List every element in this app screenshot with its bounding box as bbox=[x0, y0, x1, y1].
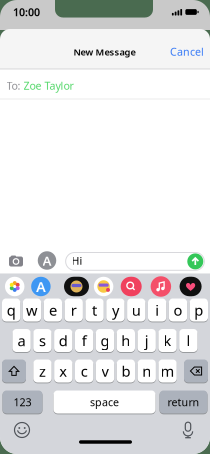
button[interactable]: Apps bbox=[38, 251, 56, 270]
staticText: 123 bbox=[13, 395, 31, 409]
staticText: h bbox=[121, 331, 130, 350]
staticText: i bbox=[155, 300, 159, 320]
staticText: l bbox=[186, 331, 190, 350]
staticText: x bbox=[59, 361, 67, 381]
button[interactable]: u bbox=[127, 298, 145, 322]
staticText: t bbox=[92, 300, 97, 320]
staticText: m bbox=[161, 361, 175, 381]
button[interactable]: Send bbox=[187, 253, 203, 269]
staticText: Hi bbox=[71, 254, 82, 268]
staticText: f bbox=[82, 331, 87, 350]
staticText: k bbox=[163, 331, 171, 350]
button[interactable]: Emoji bbox=[13, 421, 30, 438]
button[interactable]: s bbox=[33, 328, 52, 352]
button[interactable]: y bbox=[106, 298, 125, 322]
button[interactable]: o bbox=[169, 298, 187, 322]
staticText: p bbox=[194, 300, 203, 320]
button[interactable]: x bbox=[54, 359, 73, 383]
staticText: j bbox=[145, 331, 149, 350]
button[interactable]: Shift bbox=[2, 359, 26, 383]
staticText: z bbox=[39, 361, 46, 381]
button[interactable]: f bbox=[75, 328, 93, 352]
staticText: Zoe Taylor bbox=[23, 78, 73, 93]
staticText: v bbox=[101, 361, 108, 381]
button[interactable]: l bbox=[179, 328, 198, 352]
button[interactable]: k bbox=[158, 328, 177, 352]
button[interactable]: i bbox=[148, 298, 166, 322]
staticText: 10:00 bbox=[13, 5, 40, 19]
staticText: d bbox=[59, 331, 68, 350]
button[interactable]: j bbox=[137, 328, 156, 352]
button[interactable]: a bbox=[12, 328, 31, 352]
button[interactable]: Digital Touch bbox=[180, 277, 202, 296]
button[interactable]: 123 bbox=[2, 390, 42, 414]
button[interactable]: Photos bbox=[5, 277, 24, 296]
staticText: b bbox=[121, 361, 130, 381]
button[interactable]: Cancel bbox=[162, 43, 210, 59]
button[interactable]: Stickers bbox=[94, 277, 113, 296]
staticText: w bbox=[26, 300, 38, 320]
button[interactable]: d bbox=[54, 328, 72, 352]
staticText: A bbox=[42, 252, 51, 269]
staticText: r bbox=[71, 300, 77, 320]
staticText: g bbox=[100, 331, 109, 350]
button[interactable]: z bbox=[33, 359, 52, 383]
button[interactable]: w bbox=[23, 298, 41, 322]
staticText: To: bbox=[6, 78, 20, 93]
button[interactable]: Camera bbox=[7, 253, 25, 267]
staticText: y bbox=[112, 300, 119, 320]
button[interactable]: Music bbox=[151, 276, 171, 297]
button[interactable]: space bbox=[53, 390, 155, 414]
staticText: s bbox=[39, 331, 46, 350]
button[interactable]: App Store bbox=[31, 277, 51, 296]
button[interactable]: p bbox=[190, 298, 208, 322]
button[interactable]: q bbox=[2, 298, 20, 322]
staticText: q bbox=[7, 300, 16, 320]
button[interactable]: c bbox=[75, 359, 93, 383]
button[interactable]: n bbox=[138, 359, 156, 383]
staticText: return bbox=[167, 395, 199, 409]
button[interactable]: b bbox=[117, 359, 135, 383]
button[interactable]: t bbox=[85, 298, 104, 322]
staticText: A bbox=[36, 277, 46, 296]
button[interactable]: h bbox=[117, 328, 135, 352]
staticText: c bbox=[81, 361, 88, 381]
staticText: u bbox=[132, 300, 141, 320]
staticText: n bbox=[142, 361, 151, 381]
button[interactable]: r bbox=[65, 298, 83, 322]
button[interactable]: Delete bbox=[184, 359, 208, 383]
button[interactable]: m bbox=[158, 359, 177, 383]
button[interactable]: v bbox=[96, 359, 114, 383]
staticText: o bbox=[173, 300, 182, 320]
button[interactable]: Memoji bbox=[64, 277, 89, 296]
staticText: e bbox=[49, 300, 57, 320]
button[interactable]: e bbox=[44, 298, 62, 322]
staticText: a bbox=[18, 331, 26, 350]
button[interactable]: g bbox=[96, 328, 114, 352]
staticText: New Message bbox=[73, 46, 135, 58]
staticText: Cancel bbox=[170, 44, 204, 59]
staticText: space bbox=[90, 395, 119, 409]
button[interactable]: return bbox=[159, 390, 207, 414]
button[interactable]: Images bbox=[121, 277, 142, 296]
button[interactable]: Dictation bbox=[179, 421, 196, 438]
